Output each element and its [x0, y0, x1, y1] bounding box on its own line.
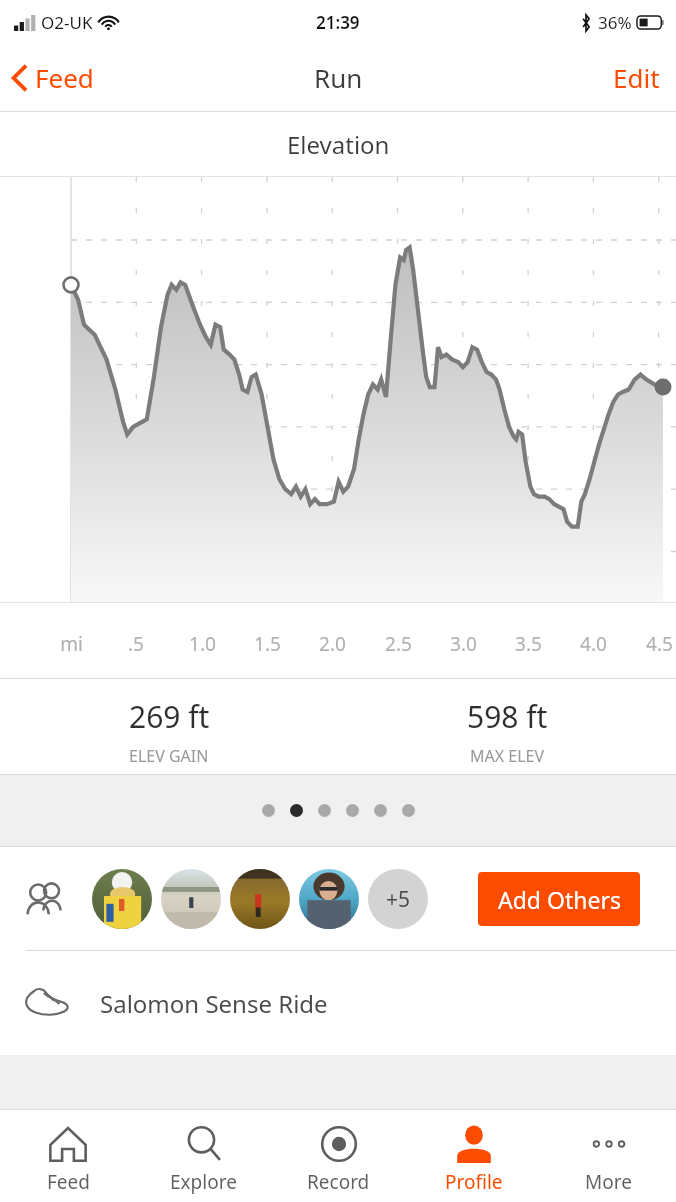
staticText: 36% [598, 11, 632, 34]
staticText: 3.0 [450, 631, 477, 657]
button[interactable]: More [541, 1110, 676, 1202]
staticText: Feed [47, 1169, 90, 1195]
staticText: 269 ft [129, 696, 210, 737]
button[interactable] [230, 869, 290, 929]
staticText: Run [314, 60, 363, 95]
button[interactable]: Record [271, 1110, 406, 1202]
staticText: 1.5 [254, 631, 281, 657]
staticText: O2-UK [41, 11, 93, 34]
staticText: Feed [35, 60, 94, 95]
button[interactable]: Explore [136, 1110, 271, 1202]
staticText: 1.0 [189, 631, 216, 657]
staticText: 4.5 [646, 631, 673, 657]
staticText: ELEV GAIN [129, 745, 209, 767]
staticText: +5 [386, 885, 411, 914]
staticText: 21:39 [316, 11, 360, 34]
staticText: .5 [128, 631, 144, 657]
staticText: Add Others [498, 884, 621, 915]
button[interactable]: Feed [0, 52, 104, 103]
button[interactable]: Profile [406, 1110, 541, 1202]
staticText: More [585, 1169, 632, 1195]
staticText: MAX ELEV [470, 745, 545, 767]
button[interactable]: Add Others [478, 872, 640, 926]
staticText: Edit [613, 60, 660, 95]
staticText: 2.5 [385, 631, 412, 657]
button[interactable]: Salomon Sense Ride [0, 951, 676, 1055]
staticText: mi [60, 631, 83, 657]
button[interactable] [299, 869, 359, 929]
staticText: Explore [170, 1169, 237, 1195]
staticText: 2.0 [319, 631, 346, 657]
staticText: Profile [445, 1169, 503, 1195]
button[interactable]: +5 [368, 869, 428, 929]
staticText: Elevation [287, 128, 390, 161]
staticText: 598 ft [467, 696, 548, 737]
staticText: Record [307, 1169, 370, 1195]
button[interactable] [92, 869, 152, 929]
staticText: 3.5 [515, 631, 542, 657]
button[interactable]: Edit [597, 52, 676, 103]
button[interactable]: Others [18, 871, 74, 927]
button[interactable]: Feed [0, 1110, 136, 1202]
staticText: 4.0 [580, 631, 607, 657]
staticText: Salomon Sense Ride [100, 987, 328, 1020]
button[interactable] [161, 869, 221, 929]
